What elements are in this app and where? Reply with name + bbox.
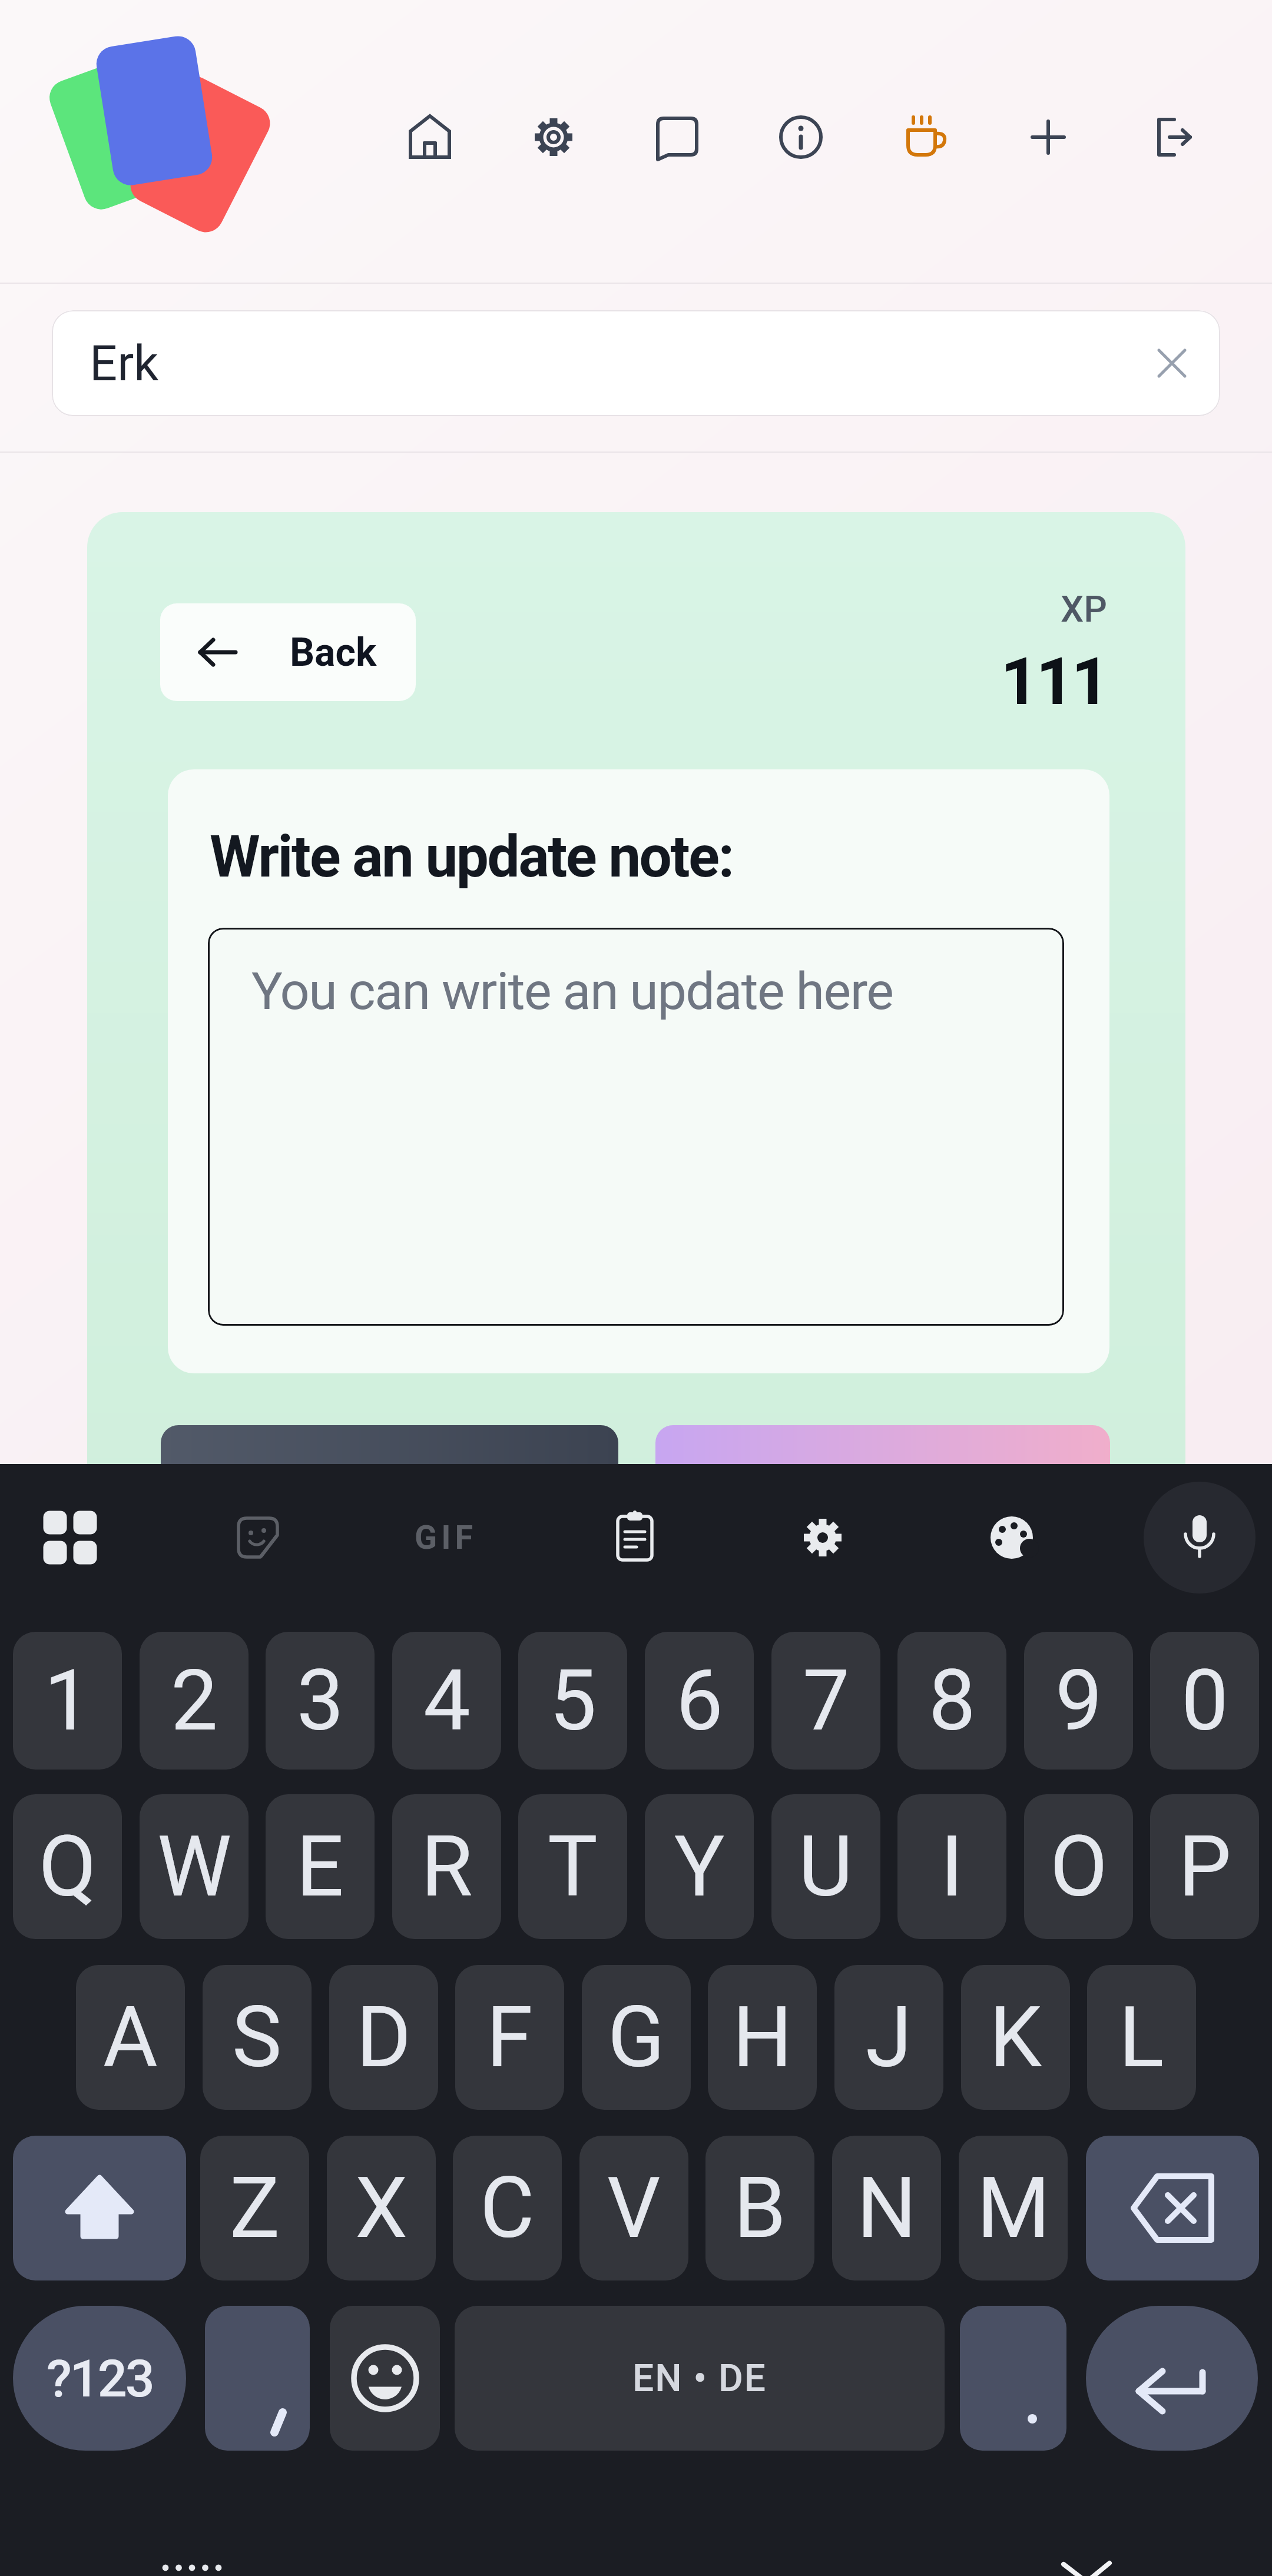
staticText: ?123 — [47, 2348, 153, 2409]
staticText: 4 — [423, 1652, 471, 1750]
button[interactable]: Erk — [52, 310, 1220, 416]
staticText: 111 — [1001, 643, 1107, 713]
button[interactable]: K — [961, 1965, 1070, 2110]
button[interactable]: 6 — [645, 1632, 754, 1770]
button[interactable]: R — [392, 1794, 501, 1939]
staticText: C — [480, 2159, 535, 2257]
staticText: K — [989, 1989, 1042, 2086]
button[interactable] — [214, 1493, 302, 1582]
staticText: H — [733, 1989, 793, 2086]
button[interactable]: 0 — [1150, 1632, 1259, 1770]
staticText: S — [232, 1989, 282, 2086]
staticText: T — [548, 1818, 598, 1916]
button[interactable]: H — [708, 1965, 817, 2110]
staticText: B — [734, 2159, 786, 2257]
staticText: 5 — [549, 1652, 597, 1750]
staticText: 9 — [1055, 1652, 1102, 1750]
button[interactable] — [1086, 2306, 1258, 2451]
button[interactable]: D — [329, 1965, 438, 2110]
button[interactable]: U — [771, 1794, 880, 1939]
button[interactable] — [1135, 327, 1208, 400]
button[interactable]: 9 — [1024, 1632, 1133, 1770]
staticText: Z — [230, 2159, 280, 2257]
staticText: 6 — [676, 1652, 723, 1750]
staticText: 2 — [171, 1652, 218, 1750]
button[interactable] — [1004, 93, 1092, 181]
button[interactable] — [591, 1493, 679, 1582]
button[interactable]: 8 — [897, 1632, 1006, 1770]
staticText: W — [157, 1818, 231, 1916]
staticText: Write an update note: — [210, 823, 733, 891]
button[interactable]: ?123 — [13, 2306, 186, 2451]
button[interactable]: P — [1150, 1794, 1259, 1939]
button[interactable]: GIF — [381, 1493, 511, 1582]
staticText: 1 — [44, 1652, 91, 1750]
button[interactable] — [1144, 1482, 1256, 1594]
button[interactable]: I — [897, 1794, 1006, 1939]
staticText: E — [296, 1818, 344, 1916]
button[interactable]: Y — [645, 1794, 754, 1939]
button[interactable] — [779, 1493, 867, 1582]
staticText: R — [421, 1818, 473, 1916]
staticText: L — [1119, 1989, 1164, 2086]
staticText: Erk — [90, 335, 159, 392]
button[interactable] — [655, 1425, 1110, 1543]
button[interactable]: 3 — [266, 1632, 375, 1770]
button[interactable] — [1128, 93, 1216, 181]
staticText: X — [355, 2159, 408, 2257]
button[interactable] — [205, 2306, 310, 2451]
button[interactable]: Q — [13, 1794, 122, 1939]
staticText: I — [940, 1818, 963, 1916]
staticText: O — [1050, 1818, 1108, 1916]
button[interactable]: C — [453, 2136, 562, 2280]
button[interactable]: O — [1024, 1794, 1133, 1939]
button[interactable] — [330, 2306, 440, 2451]
button[interactable]: T — [518, 1794, 627, 1939]
button[interactable] — [880, 93, 969, 181]
button[interactable]: 5 — [518, 1632, 627, 1770]
staticText: 3 — [297, 1652, 344, 1750]
button[interactable]: N — [832, 2136, 941, 2280]
button[interactable] — [386, 93, 474, 181]
staticText: EN • DE — [632, 2356, 767, 2401]
staticText: Back — [290, 630, 377, 675]
button[interactable]: J — [834, 1965, 943, 2110]
staticText: GIF — [415, 1518, 478, 1557]
button[interactable]: 7 — [771, 1632, 880, 1770]
button[interactable]: F — [455, 1965, 564, 2110]
button[interactable]: Z — [200, 2136, 309, 2280]
button[interactable]: W — [140, 1794, 249, 1939]
button[interactable]: 1 — [13, 1632, 122, 1770]
button[interactable]: E — [266, 1794, 375, 1939]
button[interactable]: 2 — [140, 1632, 249, 1770]
button[interactable]: 4 — [392, 1632, 501, 1770]
button[interactable]: G — [582, 1965, 691, 2110]
staticText: M — [977, 2159, 1050, 2257]
button[interactable]: V — [579, 2136, 688, 2280]
button[interactable] — [161, 1425, 618, 1543]
button[interactable]: X — [327, 2136, 436, 2280]
staticText: A — [103, 1989, 158, 2086]
button[interactable]: You can write an update here — [208, 928, 1064, 1326]
button[interactable]: A — [76, 1965, 185, 2110]
staticText: 8 — [929, 1652, 976, 1750]
button[interactable] — [757, 93, 845, 181]
button[interactable]: Back — [160, 603, 416, 701]
staticText: J — [866, 1989, 912, 2086]
button[interactable] — [509, 93, 598, 181]
staticText: G — [608, 1989, 665, 2086]
staticText: 0 — [1181, 1652, 1228, 1750]
button[interactable] — [968, 1493, 1056, 1582]
button[interactable] — [13, 2136, 186, 2280]
button[interactable] — [1086, 2136, 1259, 2280]
button[interactable]: B — [705, 2136, 814, 2280]
button[interactable]: L — [1087, 1965, 1196, 2110]
button[interactable] — [960, 2306, 1066, 2451]
staticText: U — [799, 1818, 853, 1916]
staticText: 7 — [803, 1652, 850, 1750]
button[interactable]: M — [959, 2136, 1068, 2280]
button[interactable]: EN • DE — [455, 2306, 945, 2451]
button[interactable] — [633, 93, 721, 181]
button[interactable] — [26, 1493, 114, 1582]
button[interactable]: S — [203, 1965, 312, 2110]
